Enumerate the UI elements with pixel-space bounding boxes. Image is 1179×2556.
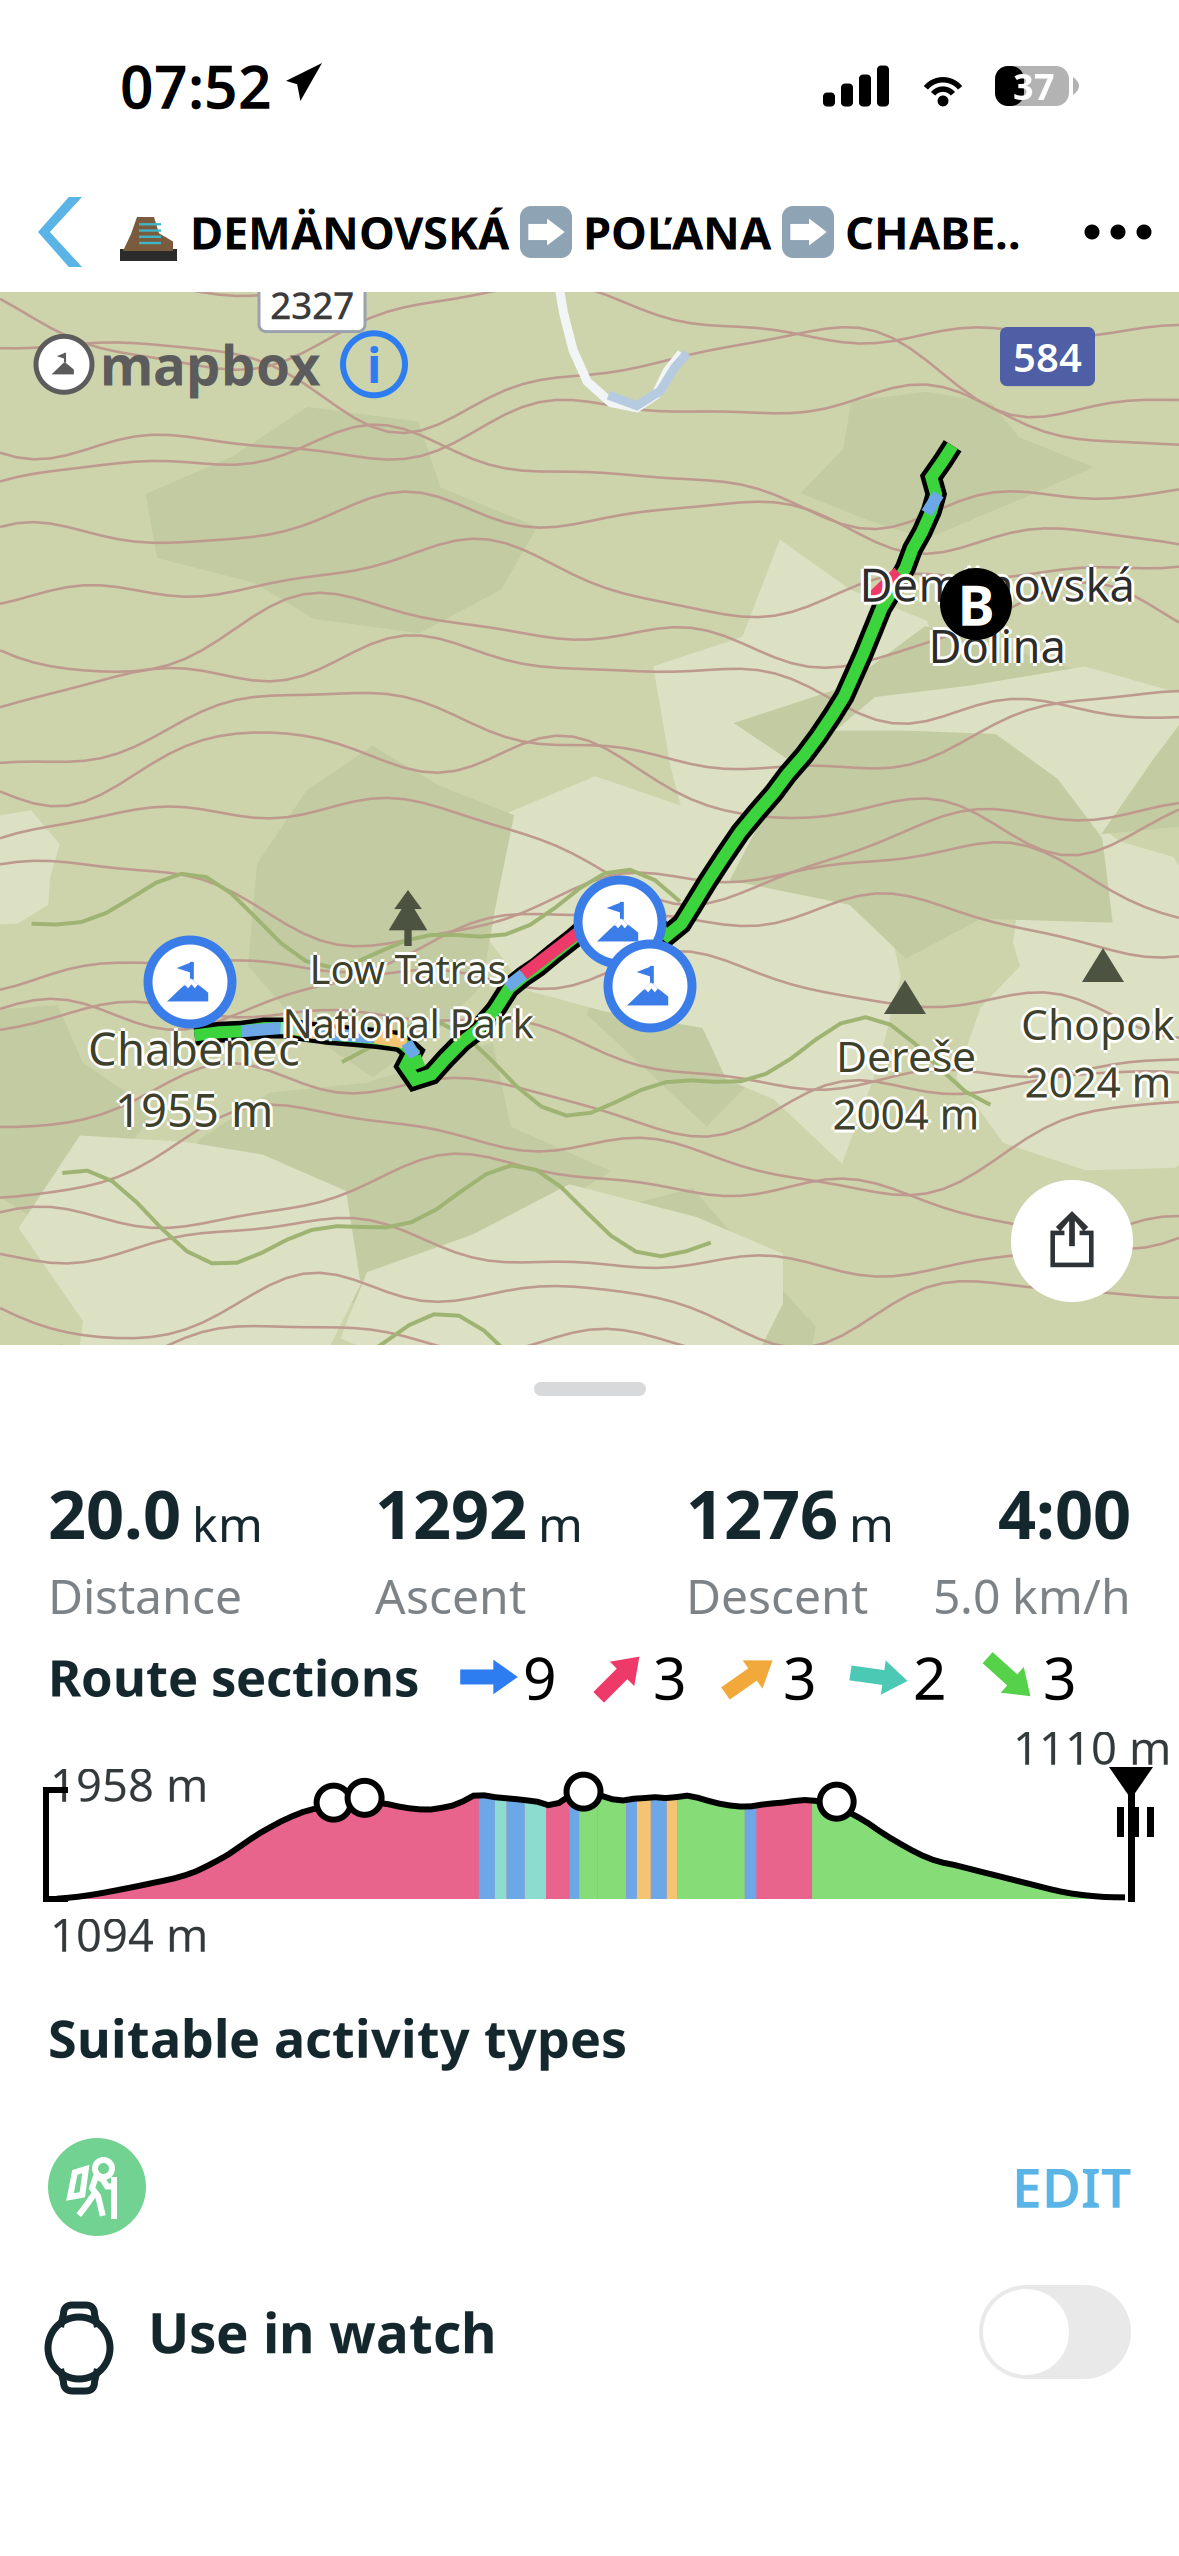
staticText: Route sections (48, 1643, 419, 1711)
staticText: 1955 m (115, 1076, 273, 1136)
staticText: mapbox (100, 328, 321, 401)
staticText: Low Tatras (306, 942, 503, 995)
staticText: 2 (913, 1638, 947, 1716)
staticText: Dereše (836, 1027, 976, 1084)
staticText: Chabenec (91, 1018, 303, 1078)
staticText: Dolina (925, 615, 1062, 675)
staticText: Use in watch (148, 2296, 497, 2368)
staticText: 2004 m (829, 1085, 976, 1141)
staticText: Chopok (1021, 998, 1175, 1055)
staticText: 37 (1013, 62, 1055, 110)
staticText: 1955 m (115, 1079, 273, 1139)
staticText: 2024 m (1024, 1050, 1171, 1106)
staticText: Chopok (1018, 995, 1172, 1052)
staticText: 07:52 (120, 47, 272, 125)
staticText: km (192, 1492, 263, 1555)
staticText: Low Tatras (309, 945, 506, 998)
staticText: Dereše (836, 1024, 976, 1081)
staticText: 1955 m (118, 1079, 276, 1139)
staticText: 2004 m (832, 1085, 979, 1141)
button[interactable]: Use in watch (979, 2285, 1131, 2379)
staticText: Chabenec (88, 1021, 300, 1081)
staticText: POĽANA (583, 202, 771, 262)
staticText: 1110 m (1013, 1717, 1171, 1777)
staticText: Dereše (833, 1027, 973, 1084)
staticText: 2004 m (832, 1088, 979, 1144)
staticText: Dolina (928, 612, 1065, 672)
staticText: 1955 m (112, 1079, 270, 1139)
staticText: 1094 m (50, 1904, 208, 1964)
staticText: m (849, 1492, 894, 1555)
staticText: 2004 m (832, 1082, 979, 1138)
staticText: Low Tatras (309, 942, 506, 995)
staticText: B (957, 567, 994, 641)
staticText: DEMÄNOVSKÁ (190, 202, 509, 262)
staticText: Dolina (928, 618, 1065, 678)
staticText: 2327 (270, 280, 354, 330)
staticText: EDIT (1012, 2152, 1131, 2222)
staticText: 1955 m (115, 1082, 273, 1142)
staticText: Descent (686, 1563, 868, 1627)
staticText: Ascent (375, 1563, 526, 1627)
staticText: m (538, 1492, 583, 1555)
staticText: 20.0 (48, 1469, 181, 1557)
staticText: 5.0 km/h (933, 1563, 1131, 1627)
staticText: Chabenec (88, 1015, 300, 1075)
staticText: 2024 m (1027, 1053, 1174, 1109)
staticText: Chabenec (88, 1018, 300, 1078)
staticText: 9 (523, 1638, 557, 1716)
button[interactable]: Hiking activity (48, 2138, 146, 2236)
staticText: 3 (783, 1638, 817, 1716)
staticText: National Park (285, 996, 536, 1049)
staticText: Chabenec (85, 1018, 297, 1078)
button[interactable]: Share (1011, 1180, 1133, 1302)
staticText: CHABE… (845, 202, 1034, 262)
staticText: Demänovská (859, 554, 1134, 614)
button[interactable]: Map information (343, 333, 405, 395)
staticText: Dereše (839, 1027, 979, 1084)
staticText: 3 (1043, 1638, 1077, 1716)
staticText: Demänovská (856, 554, 1131, 614)
staticText: Low Tatras (312, 942, 509, 995)
staticText: Chopok (1024, 995, 1178, 1052)
staticText: Distance (48, 1563, 242, 1627)
staticText: National Park (282, 996, 533, 1049)
staticText: Chopok (1021, 995, 1175, 1052)
button[interactable]: More options (1063, 197, 1173, 267)
staticText: 1276 (686, 1469, 838, 1557)
staticText: Demänovská (859, 551, 1134, 611)
staticText: Dolina (931, 615, 1068, 675)
staticText: 2024 m (1024, 1053, 1171, 1109)
staticText: 2024 m (1021, 1053, 1168, 1109)
button[interactable]: EDIT (1012, 2138, 1131, 2236)
staticText: Dereše (836, 1030, 976, 1087)
staticText: National Park (282, 999, 533, 1052)
staticText: 584 (1013, 330, 1082, 383)
staticText: 2024 m (1024, 1056, 1171, 1112)
staticText: Suitable activity types (48, 2003, 627, 2072)
staticText: 4:00 (998, 1469, 1131, 1557)
staticText: i (367, 332, 381, 396)
staticText: 2004 m (835, 1085, 982, 1141)
staticText: National Park (282, 993, 533, 1046)
staticText: 1958 m (50, 1754, 208, 1814)
staticText: Demänovská (862, 554, 1137, 614)
staticText: National Park (279, 996, 530, 1049)
staticText: Chopok (1021, 992, 1175, 1049)
staticText: 3 (653, 1638, 687, 1716)
button[interactable]: Back (10, 182, 110, 282)
staticText: Low Tatras (309, 939, 506, 992)
staticText: Dolina (928, 615, 1065, 675)
staticText: Demänovská (859, 557, 1134, 617)
staticText: 1292 (375, 1469, 527, 1557)
